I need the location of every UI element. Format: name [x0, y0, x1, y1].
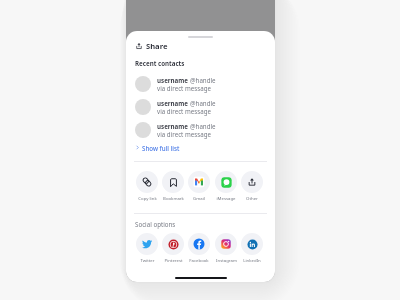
staticText: iMessage [216, 195, 236, 201]
staticText: Copy link [138, 195, 157, 201]
button[interactable]: Copy link [134, 171, 160, 201]
button[interactable]: Instagram [213, 233, 239, 263]
button[interactable]: Share [135, 40, 168, 52]
staticText: via direct message [157, 130, 211, 138]
button[interactable]: Twitter [134, 233, 160, 263]
staticText: Share [146, 41, 168, 51]
button[interactable]: username [135, 75, 266, 92]
staticText: Other [246, 195, 258, 201]
button[interactable]: username [135, 121, 266, 138]
staticText: Facebook [189, 257, 209, 263]
staticText: username [157, 99, 190, 107]
button[interactable]: username [135, 98, 266, 115]
staticText: LinkedIn [243, 257, 261, 263]
staticText: @handle [190, 76, 216, 84]
button[interactable]: LinkedIn [239, 233, 265, 263]
button[interactable]: Other [239, 171, 265, 201]
staticText: Instagram [216, 257, 237, 263]
button[interactable]: iMessage [213, 171, 239, 201]
button[interactable]: Gmail [186, 171, 212, 201]
staticText: Twitter [140, 257, 155, 263]
button[interactable]: Facebook [186, 233, 212, 263]
button[interactable]: Pinterest [160, 233, 186, 263]
staticText: via direct message [157, 84, 211, 92]
staticText: Social options [135, 220, 176, 228]
staticText: @handle [190, 122, 216, 130]
button[interactable]: Show full list [135, 143, 180, 152]
staticText: via direct message [157, 107, 211, 115]
staticText: Bookmark [163, 195, 184, 201]
staticText: @handle [190, 99, 216, 107]
staticText: Pinterest [164, 257, 183, 263]
staticText: Recent contacts [135, 59, 185, 67]
staticText: Gmail [193, 195, 205, 201]
staticText: username [157, 122, 190, 130]
button[interactable]: Bookmark [160, 171, 186, 201]
staticText: username [157, 76, 190, 84]
staticText: Show full list [142, 144, 180, 152]
